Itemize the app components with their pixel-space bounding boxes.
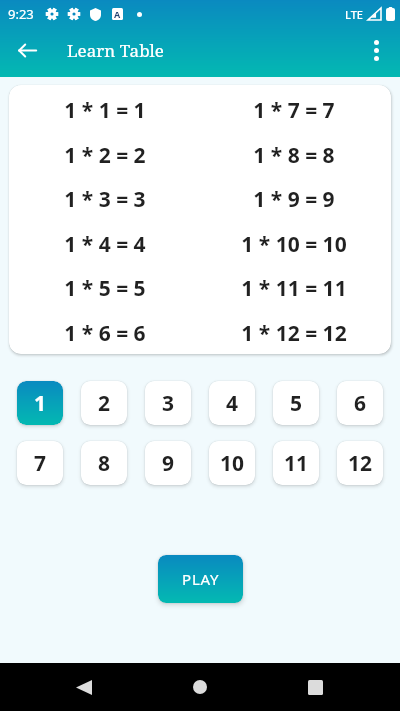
staticText: 4 [226, 389, 239, 418]
staticText: 7 [34, 449, 47, 478]
staticText: 2 [98, 389, 111, 418]
staticText: 1 * 5 = 5 [64, 274, 146, 303]
staticText: 1 * 12 = 12 [241, 319, 347, 348]
staticText: 1 [34, 389, 47, 418]
staticText: Learn Table [67, 39, 164, 62]
button[interactable]: 9 [145, 441, 191, 485]
staticText: 1 * 2 = 2 [64, 141, 146, 170]
staticText: 3 [162, 389, 175, 418]
staticText: 1 * 8 = 8 [253, 141, 335, 170]
button[interactable]: 3 [145, 381, 191, 425]
button[interactable]: Home [160, 663, 240, 711]
staticText: LTE [345, 7, 363, 22]
button[interactable]: 1 [17, 381, 63, 425]
button[interactable]: Recents [275, 663, 355, 711]
button[interactable]: 11 [273, 441, 319, 485]
staticText: 9:23 [8, 5, 34, 23]
staticText: 1 * 4 = 4 [64, 230, 146, 259]
staticText: PLAY [182, 569, 220, 589]
staticText: 8 [98, 449, 111, 478]
button[interactable]: Back [5, 28, 49, 72]
button[interactable]: 2 [81, 381, 127, 425]
staticText: 10 [220, 449, 245, 478]
button[interactable]: PLAY [158, 555, 243, 603]
button[interactable]: 7 [17, 441, 63, 485]
button[interactable]: More options [354, 28, 398, 72]
button[interactable]: 5 [273, 381, 319, 425]
staticText: 1 * 11 = 11 [241, 274, 347, 303]
button[interactable]: 6 [337, 381, 383, 425]
button[interactable]: Back [44, 663, 124, 711]
staticText: 1 * 7 = 7 [253, 96, 335, 125]
button[interactable]: 10 [209, 441, 255, 485]
staticText: A [114, 8, 121, 20]
staticText: 1 * 3 = 3 [64, 185, 146, 214]
staticText: 5 [290, 389, 303, 418]
staticText: 1 * 10 = 10 [241, 230, 347, 259]
staticText: 1 * 1 = 1 [64, 96, 146, 125]
staticText: 1 * 9 = 9 [253, 185, 335, 214]
staticText: 11 [284, 449, 309, 478]
button[interactable]: 8 [81, 441, 127, 485]
staticText: 1 * 6 = 6 [64, 319, 146, 348]
staticText: 12 [348, 449, 373, 478]
staticText: 6 [354, 389, 367, 418]
button[interactable]: 4 [209, 381, 255, 425]
staticText: 9 [162, 449, 175, 478]
button[interactable]: 12 [337, 441, 383, 485]
